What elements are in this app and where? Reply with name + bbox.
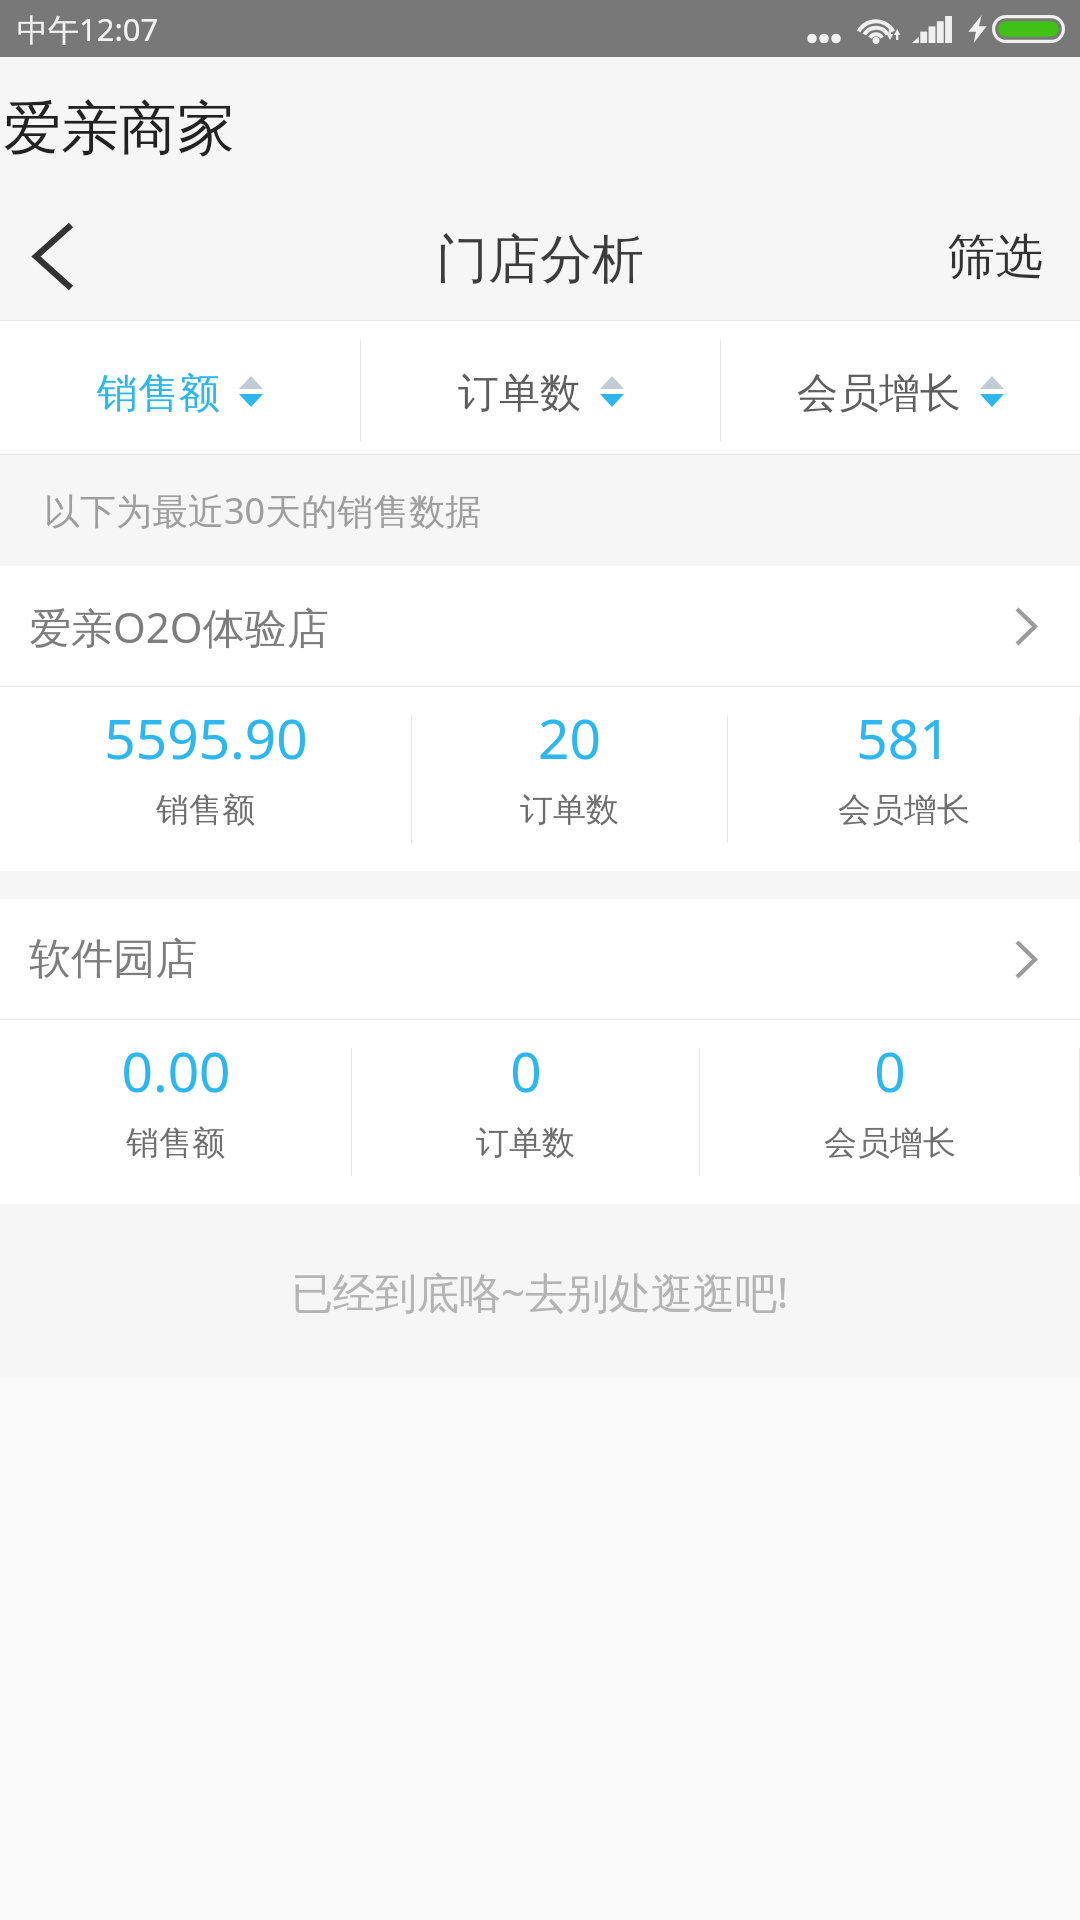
staticText: 会员增长 bbox=[797, 368, 961, 420]
staticText: 销售额 bbox=[156, 789, 255, 831]
button[interactable]: 581 bbox=[728, 687, 1079, 871]
button[interactable]: Back bbox=[0, 193, 107, 320]
button[interactable]: 0.00 bbox=[0, 1020, 351, 1204]
button[interactable]: 会员增长 bbox=[721, 321, 1080, 454]
staticText: 会员增长 bbox=[824, 1122, 956, 1164]
staticText: 销售额 bbox=[97, 368, 220, 420]
button[interactable]: 0 bbox=[352, 1020, 699, 1204]
button[interactable]: 爱亲O2O体验店 bbox=[0, 566, 1080, 686]
staticText: 20 bbox=[538, 700, 601, 775]
staticText: 0 bbox=[874, 1033, 906, 1108]
staticText: 筛选 bbox=[947, 227, 1043, 287]
staticText: 581 bbox=[856, 700, 951, 775]
button[interactable]: 软件园店 bbox=[0, 899, 1080, 1019]
staticText: 爱亲O2O体验店 bbox=[29, 598, 329, 655]
staticText: 爱亲商家 bbox=[3, 92, 235, 165]
staticText: 0.00 bbox=[121, 1033, 231, 1108]
staticText: 订单数 bbox=[458, 368, 581, 420]
button[interactable]: 筛选 bbox=[917, 193, 1080, 320]
staticText: 软件园店 bbox=[29, 933, 197, 986]
staticText: 销售额 bbox=[126, 1122, 225, 1164]
staticText: 已经到底咯~去别处逛逛吧! bbox=[291, 1263, 789, 1320]
button[interactable]: 20 bbox=[412, 687, 727, 871]
staticText: 门店分析 bbox=[436, 227, 644, 293]
button[interactable]: 5595.90 bbox=[0, 687, 411, 871]
button[interactable]: 销售额 bbox=[0, 321, 360, 454]
button[interactable]: 0 bbox=[700, 1020, 1079, 1204]
staticText: 0 bbox=[510, 1033, 542, 1108]
staticText: 中午12:07 bbox=[17, 8, 159, 50]
staticText: 以下为最近30天的销售数据 bbox=[44, 486, 482, 535]
staticText: 订单数 bbox=[520, 789, 619, 831]
staticText: 订单数 bbox=[476, 1122, 575, 1164]
staticText: 5595.90 bbox=[104, 700, 308, 775]
button[interactable]: 订单数 bbox=[361, 321, 720, 454]
staticText: 会员增长 bbox=[838, 789, 970, 831]
